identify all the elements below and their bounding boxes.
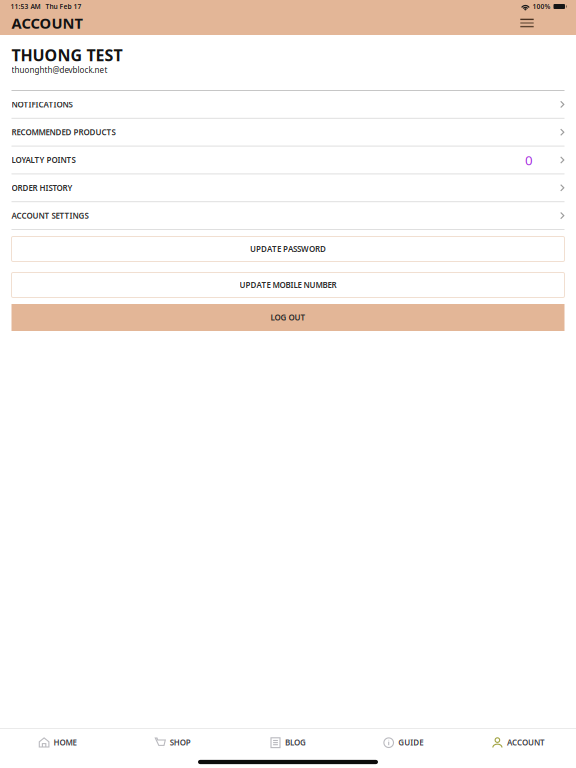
staticText: ACCOUNT SETTINGS — [11, 210, 88, 221]
staticText: UPDATE MOBILE NUMBER — [239, 280, 336, 290]
staticText: LOG OUT — [270, 312, 305, 323]
staticText: 11:53 AM — [10, 2, 40, 11]
button[interactable]: RECOMMENDED PRODUCTS — [11, 119, 564, 147]
button[interactable]: UPDATE PASSWORD — [11, 236, 564, 261]
staticText: NOTIFICATIONS — [11, 99, 72, 110]
button[interactable]: BLOG — [230, 728, 346, 756]
staticText: 0 — [525, 151, 533, 169]
staticText: ACCOUNT — [507, 737, 545, 748]
staticText: UPDATE PASSWORD — [250, 244, 326, 254]
staticText: SHOP — [170, 737, 191, 748]
staticText: THUONG TEST — [11, 44, 122, 66]
button[interactable]: ACCOUNT — [461, 728, 576, 756]
staticText: LOYALTY POINTS — [11, 155, 75, 165]
staticText: GUIDE — [398, 737, 423, 748]
staticText: BLOG — [285, 737, 306, 748]
button[interactable]: LOG OUT — [11, 304, 564, 331]
button[interactable]: LOYALTY POINTS — [11, 147, 564, 174]
button[interactable]: Menu — [516, 12, 538, 34]
staticText: RECOMMENDED PRODUCTS — [11, 127, 115, 137]
button[interactable]: UPDATE MOBILE NUMBER — [11, 272, 564, 297]
staticText: HOME — [54, 737, 77, 748]
button[interactable]: GUIDE — [346, 728, 461, 756]
button[interactable]: ACCOUNT SETTINGS — [11, 202, 564, 230]
staticText: ACCOUNT — [11, 13, 82, 33]
button[interactable]: ORDER HISTORY — [11, 174, 564, 202]
button[interactable]: SHOP — [115, 728, 230, 756]
staticText: thuonghth@devblock.net — [11, 65, 107, 75]
staticText: Thu Feb 17 — [45, 2, 81, 11]
button[interactable]: NOTIFICATIONS — [11, 91, 564, 119]
staticText: 100% — [532, 2, 550, 11]
staticText: ORDER HISTORY — [11, 182, 72, 193]
button[interactable]: HOME — [0, 728, 115, 756]
